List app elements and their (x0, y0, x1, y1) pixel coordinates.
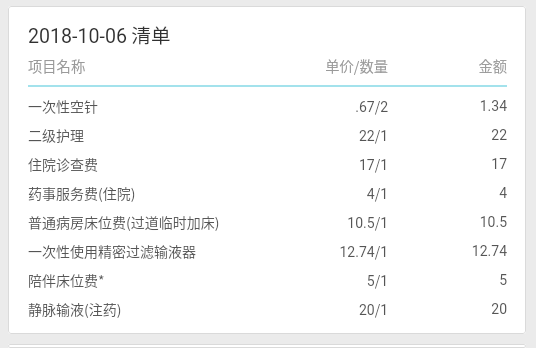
staticText: 5/1 (268, 270, 388, 290)
button[interactable]: 陪伴床位费* (28, 265, 507, 294)
staticText: 20/1 (268, 299, 388, 319)
staticText: 12.74/1 (268, 241, 388, 261)
staticText: 17/1 (268, 154, 388, 174)
staticText: 22/1 (268, 125, 388, 145)
staticText: 22 (388, 127, 507, 143)
staticText: 20 (388, 301, 507, 317)
staticText: 金额 (388, 55, 507, 76)
staticText: 2018-10-06 清单 (28, 20, 171, 48)
staticText: 5 (388, 272, 507, 288)
button[interactable]: 住院诊查费 (28, 149, 507, 178)
staticText: 17 (388, 156, 507, 172)
staticText: 12.74 (388, 243, 507, 259)
staticText: 住院诊查费 (28, 154, 98, 174)
button[interactable]: 一次性使用精密过滤输液器 (28, 236, 507, 265)
staticText: 4/1 (268, 183, 388, 203)
staticText: 10.5 (388, 214, 507, 230)
staticText: 10.5/1 (268, 212, 388, 232)
button[interactable]: 普通病房床位费(过道临时加床) (28, 207, 507, 236)
staticText: 陪伴床位费* (28, 270, 105, 290)
button[interactable]: 一次性空针 (28, 91, 507, 120)
staticText: 一次性空针 (28, 96, 98, 116)
staticText: 4 (388, 185, 507, 201)
staticText: 1.34 (388, 98, 507, 114)
button[interactable]: 静脉输液(注药) (28, 294, 507, 323)
staticText: 项目名称 (28, 55, 86, 76)
staticText: 药事服务费(住院) (28, 183, 136, 203)
staticText: 静脉输液(注药) (28, 299, 122, 319)
button[interactable]: 二级护理 (28, 120, 507, 149)
staticText: 一次性使用精密过滤输液器 (28, 241, 196, 261)
staticText: 单价/数量 (268, 55, 388, 76)
staticText: .67/2 (268, 96, 388, 116)
staticText: 二级护理 (28, 125, 84, 145)
staticText: 普通病房床位费(过道临时加床) (28, 212, 220, 232)
button[interactable]: 药事服务费(住院) (28, 178, 507, 207)
